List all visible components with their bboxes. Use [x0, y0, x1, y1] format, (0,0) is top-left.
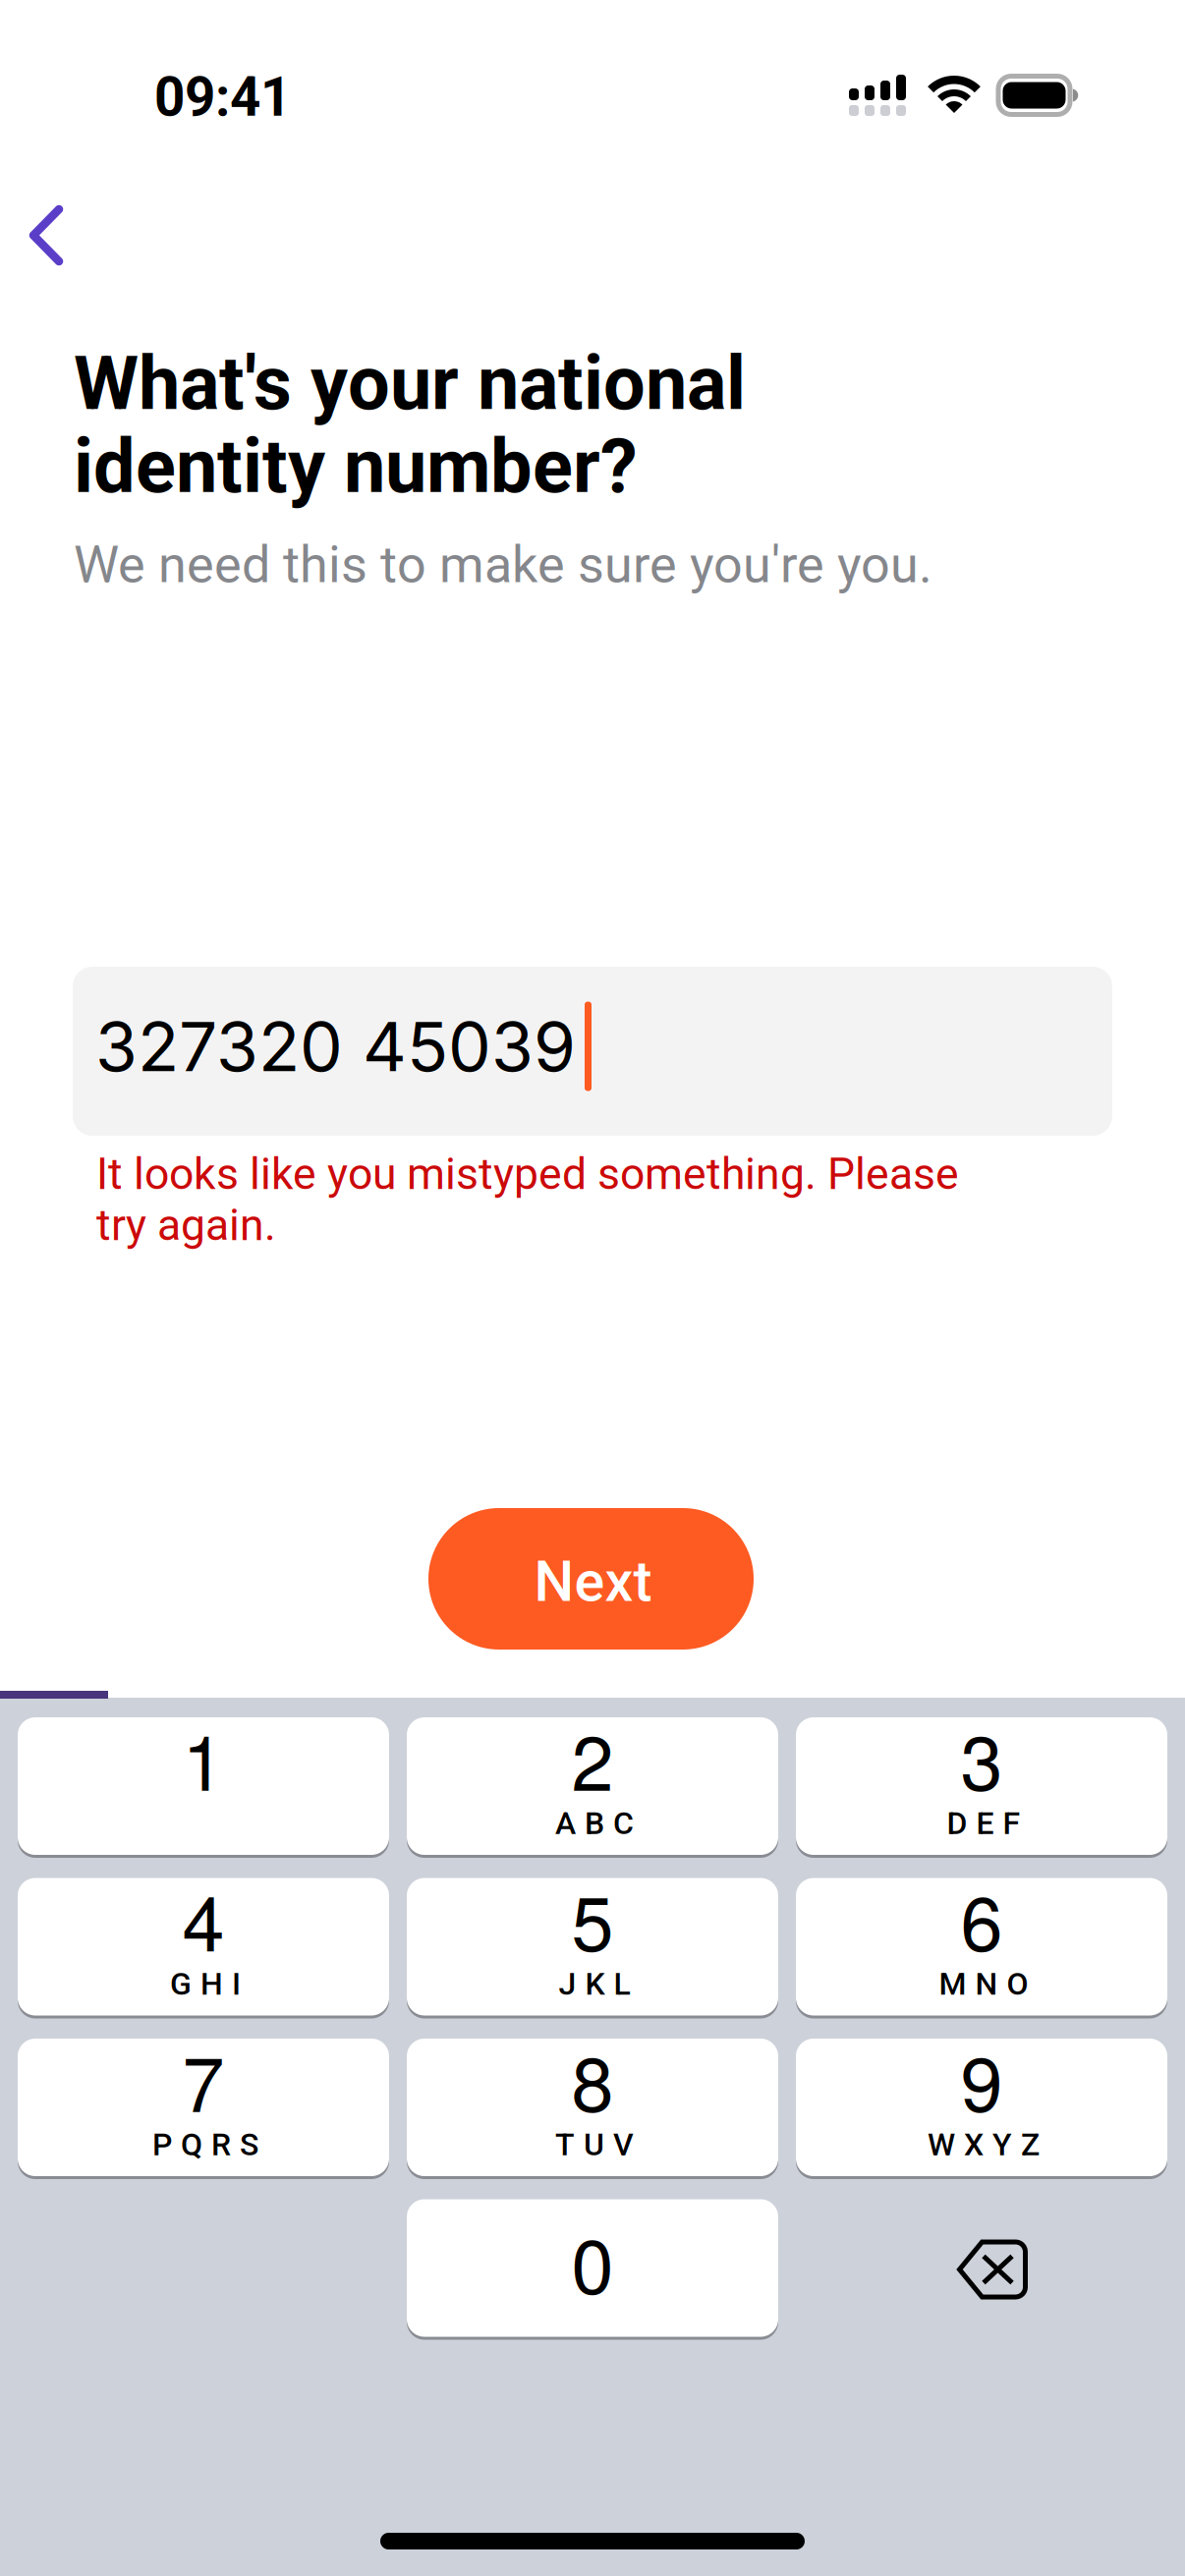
- staticText: 6: [960, 1864, 1003, 1973]
- staticText: 3: [960, 1704, 1003, 1812]
- staticText: 327320 45039: [95, 1005, 576, 1088]
- staticText: 7: [182, 2025, 225, 2134]
- staticText: MNO: [939, 1965, 1028, 2002]
- staticText: 9: [960, 2025, 1003, 2134]
- staticText: GHI: [170, 1965, 241, 2002]
- staticText: 0: [571, 2207, 614, 2316]
- button[interactable]: 1: [18, 1717, 389, 1858]
- button[interactable]: Next: [428, 1508, 754, 1650]
- button[interactable]: 4: [18, 1878, 389, 2018]
- button[interactable]: 5: [407, 1878, 778, 2018]
- staticText: 4: [182, 1864, 225, 1973]
- button[interactable]: 7: [18, 2039, 389, 2179]
- button[interactable]: Back: [0, 187, 96, 289]
- staticText: It looks like you mistyped something. Pl…: [96, 1148, 959, 1251]
- staticText: 09:41: [154, 66, 291, 129]
- staticText: We need this to make sure you're you.: [74, 535, 932, 594]
- button[interactable]: 3: [796, 1717, 1167, 1858]
- staticText: JKL: [559, 1965, 630, 2002]
- button[interactable]: 9: [796, 2039, 1167, 2179]
- staticText: What's your national identity number?: [74, 340, 746, 510]
- staticText: 2: [571, 1704, 614, 1812]
- staticText: ABC: [555, 1805, 634, 1842]
- button[interactable]: 2: [407, 1717, 778, 1858]
- staticText: 1: [182, 1704, 225, 1812]
- button[interactable]: Delete: [796, 2199, 1167, 2340]
- button[interactable]: 6: [796, 1878, 1167, 2018]
- staticText: 8: [571, 2025, 614, 2134]
- staticText: TUV: [555, 2126, 634, 2163]
- staticText: PQRS: [152, 2126, 258, 2163]
- staticText: DEF: [947, 1805, 1020, 1842]
- button[interactable]: 8: [407, 2039, 778, 2179]
- staticText: Next: [534, 1549, 652, 1615]
- button[interactable]: 0: [407, 2199, 778, 2340]
- staticText: 5: [571, 1864, 614, 1973]
- staticText: WXYZ: [928, 2126, 1040, 2163]
